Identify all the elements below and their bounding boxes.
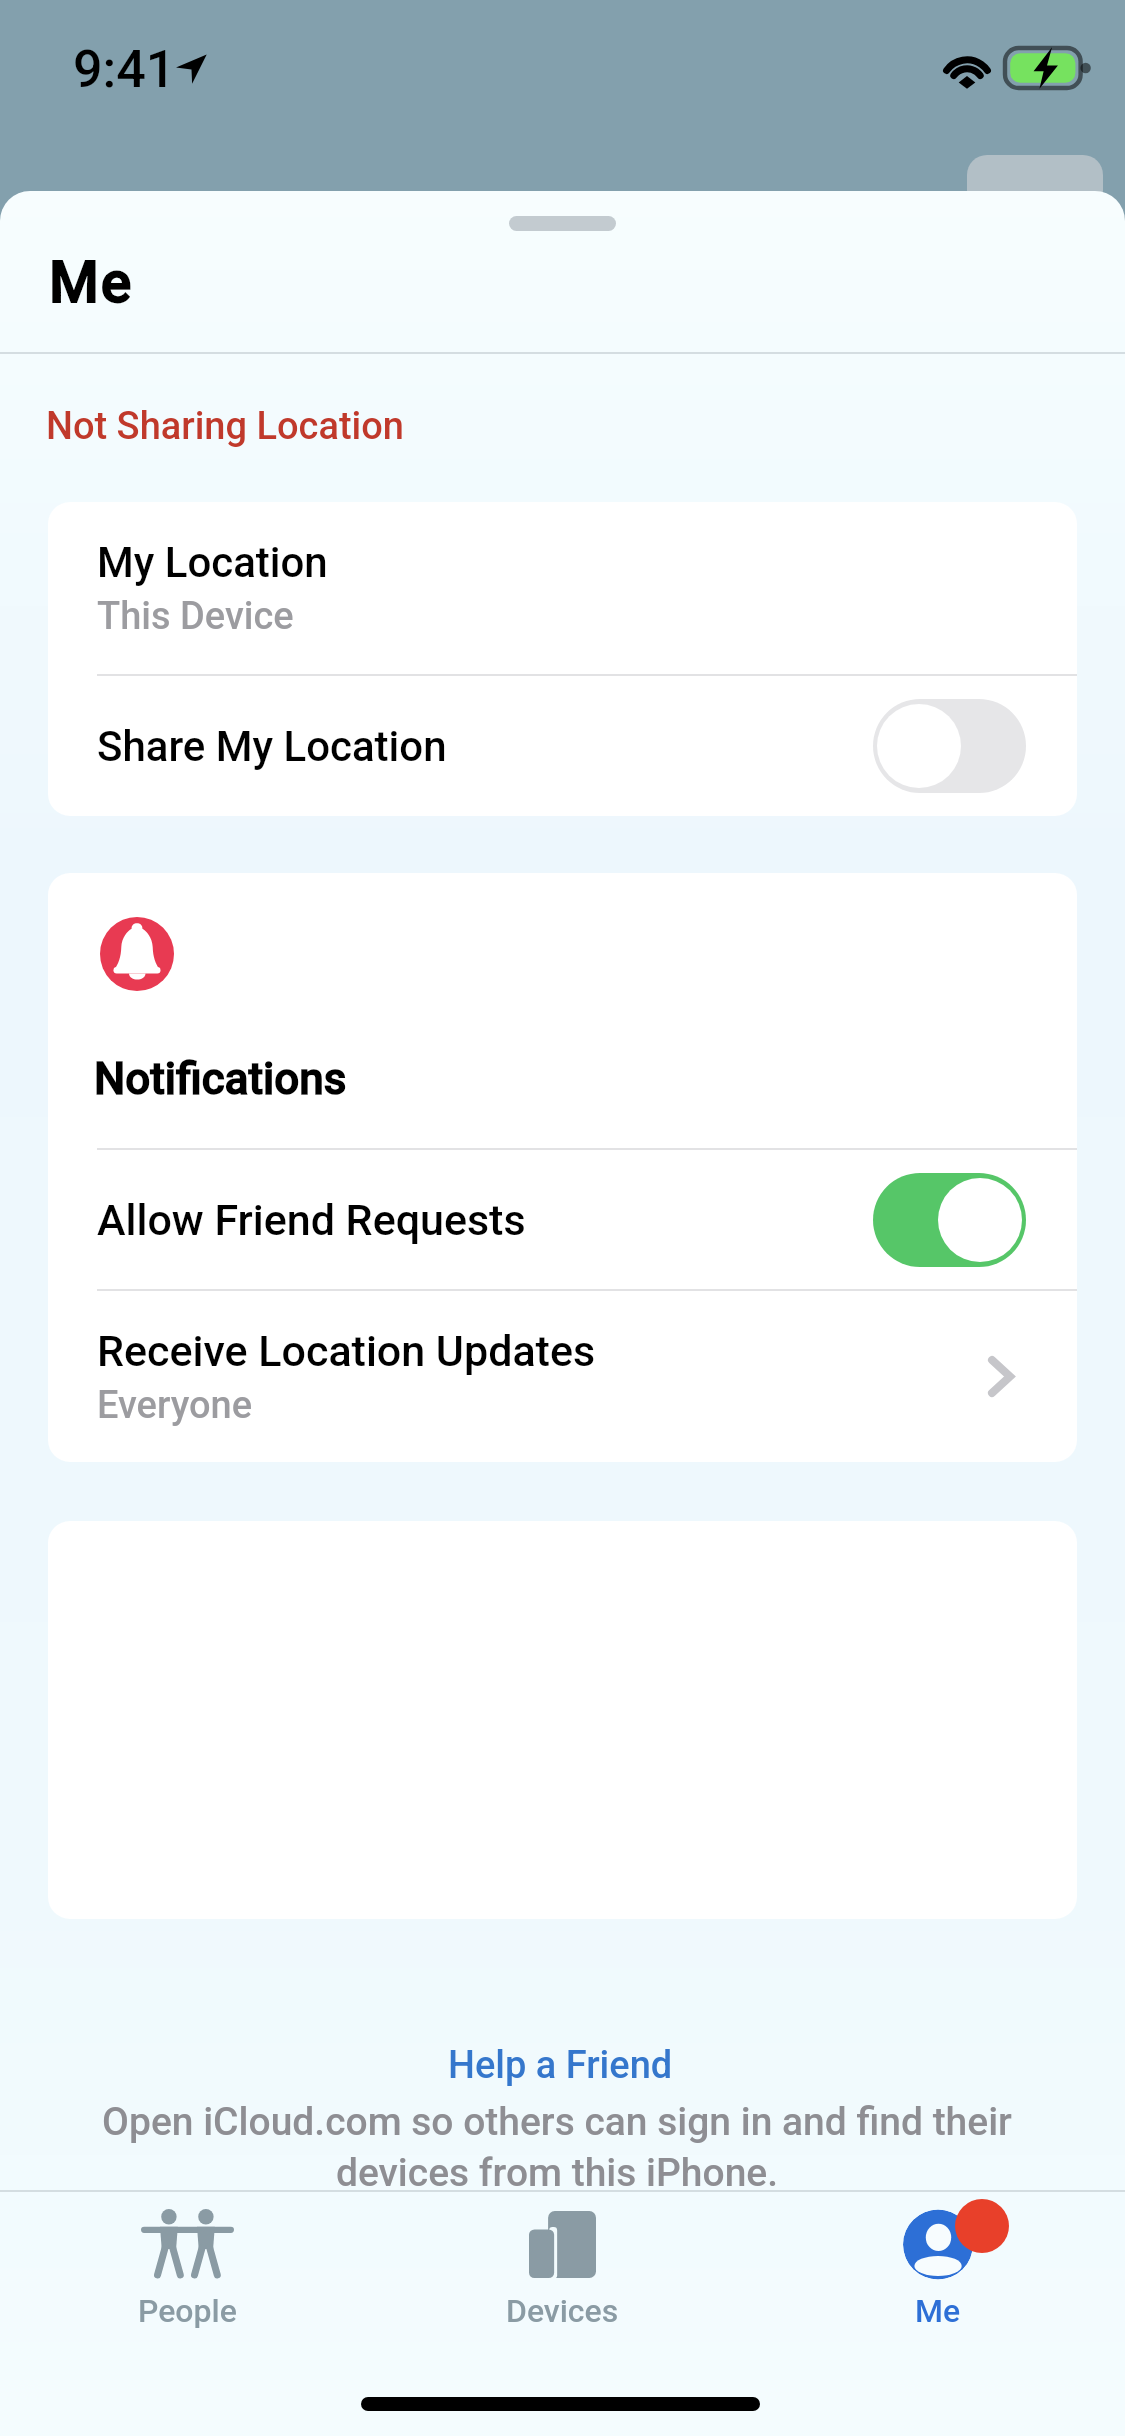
button[interactable]: Share My Location bbox=[48, 676, 1077, 816]
staticText: Devices bbox=[506, 2292, 619, 2330]
staticText: Help a Friend bbox=[448, 2043, 673, 2088]
button[interactable]: People bbox=[0, 2192, 375, 2352]
button[interactable]: Allow Friend Requests bbox=[873, 1173, 1026, 1267]
staticText: Open iCloud.com so others can sign in an… bbox=[62, 2099, 1052, 2196]
button[interactable]: Me bbox=[750, 2192, 1125, 2352]
button[interactable]: Allow Friend Requests bbox=[48, 1150, 1077, 1289]
staticText: Me bbox=[915, 2292, 961, 2330]
button[interactable]: My Location bbox=[48, 502, 1077, 674]
staticText: 9:41 bbox=[73, 39, 176, 100]
staticText: Me bbox=[49, 249, 133, 316]
staticText: Receive Location Updates bbox=[97, 1326, 596, 1376]
staticText: Not Sharing Location bbox=[46, 404, 404, 449]
staticText: Share My Location bbox=[97, 722, 447, 771]
staticText: Notifications bbox=[94, 1053, 347, 1105]
button[interactable]: Share My Location bbox=[873, 699, 1026, 793]
staticText: Everyone bbox=[97, 1383, 253, 1428]
button[interactable]: Help a Friend bbox=[428, 2039, 693, 2092]
staticText: People bbox=[138, 2292, 237, 2330]
button[interactable]: Devices bbox=[375, 2192, 750, 2352]
button[interactable]: Receive Location Updates bbox=[48, 1291, 1077, 1462]
staticText: Allow Friend Requests bbox=[97, 1195, 526, 1245]
staticText: My Location bbox=[97, 538, 328, 587]
other: Notifications bbox=[100, 917, 174, 991]
staticText: This Device bbox=[97, 594, 294, 639]
